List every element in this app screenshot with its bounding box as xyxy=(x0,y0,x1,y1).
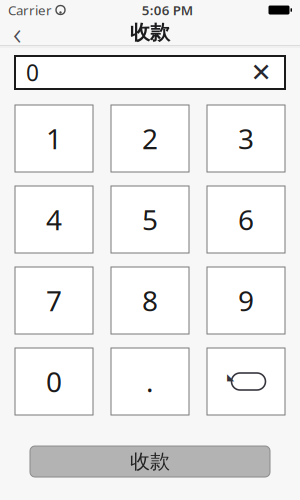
button[interactable]: Delete xyxy=(207,348,285,415)
staticText: ‹ xyxy=(13,11,21,54)
staticText: ◣ xyxy=(227,372,234,382)
button[interactable]: Back xyxy=(0,20,34,45)
button[interactable]: 9 xyxy=(207,267,285,334)
staticText: 6 xyxy=(238,201,254,238)
button[interactable]: 8 xyxy=(111,267,189,334)
staticText: Carrier xyxy=(8,1,52,19)
staticText: ✕ xyxy=(250,58,271,87)
staticText: 8 xyxy=(142,282,158,319)
staticText: . xyxy=(146,363,154,400)
staticText: 收款 xyxy=(130,20,170,45)
button[interactable]: 2 xyxy=(111,105,189,172)
staticText: 收款 xyxy=(130,449,170,474)
button[interactable]: 1 xyxy=(15,105,93,172)
staticText: 5:06 PM xyxy=(142,1,193,19)
button[interactable]: 7 xyxy=(15,267,93,334)
button[interactable]: 5 xyxy=(111,186,189,253)
button[interactable]: 3 xyxy=(207,105,285,172)
staticText: 1 xyxy=(46,120,62,157)
button[interactable]: Clear xyxy=(248,59,274,85)
staticText: 3 xyxy=(238,120,254,157)
staticText: 5 xyxy=(142,201,158,238)
button[interactable]: 收款 xyxy=(30,446,270,477)
staticText: 2 xyxy=(142,120,158,157)
staticText: 4 xyxy=(46,201,62,238)
staticText: 9 xyxy=(238,282,254,319)
staticText: 7 xyxy=(46,282,62,319)
staticText: 0 xyxy=(26,57,39,87)
button[interactable]: 6 xyxy=(207,186,285,253)
button[interactable]: 0 xyxy=(15,348,93,415)
button[interactable]: . xyxy=(111,348,189,415)
staticText: 0 xyxy=(46,363,62,400)
button[interactable]: 4 xyxy=(15,186,93,253)
